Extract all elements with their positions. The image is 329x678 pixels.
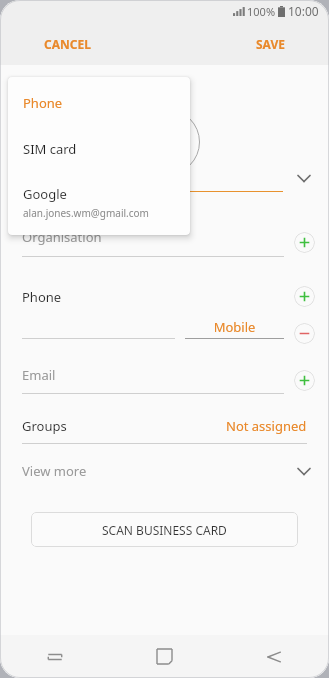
button[interactable]: Google (8, 172, 190, 235)
button[interactable]: SAVE (250, 30, 291, 58)
button[interactable]: Phone (0, 286, 329, 307)
button[interactable]: CANCEL (38, 30, 97, 58)
button[interactable]: Email (0, 366, 329, 394)
button[interactable]: Recents (0, 635, 109, 678)
button[interactable]: Expand name (293, 167, 315, 189)
staticText: Groups (22, 417, 226, 435)
button[interactable]: Name (0, 164, 329, 192)
staticText: SIM card (23, 140, 77, 158)
button[interactable]: Add phone number (294, 286, 315, 307)
staticText: Phone (22, 288, 294, 306)
button[interactable]: Organisation (0, 228, 329, 257)
button[interactable]: Add email (294, 370, 315, 391)
staticText: SAVE (256, 36, 285, 52)
button[interactable]: Back (219, 635, 329, 678)
button[interactable]: Add organisation (294, 232, 315, 253)
staticText: CANCEL (44, 36, 91, 52)
staticText: SCAN BUSINESS CARD (102, 522, 227, 538)
staticText: Phone (23, 94, 63, 112)
staticText: Email (22, 366, 56, 384)
button[interactable]: Remove phone number (294, 323, 315, 344)
staticText: Not assigned (226, 417, 307, 435)
staticText: View more (22, 462, 293, 480)
staticText: Organisation (22, 228, 102, 246)
staticText: 100% (247, 4, 276, 19)
button[interactable]: Groups (0, 417, 329, 444)
staticText: 10:00 (288, 3, 319, 19)
button[interactable]: SIM card (8, 126, 190, 172)
staticText: Mobile (185, 318, 284, 336)
button[interactable]: View more (0, 456, 329, 486)
button[interactable]: Home (109, 635, 219, 678)
staticText: Google (23, 185, 67, 203)
button[interactable]: Mobile (0, 318, 329, 339)
button[interactable]: Phone (8, 77, 190, 126)
staticText: alan.jones.wm@gmail.com (23, 206, 149, 220)
button[interactable]: SCAN BUSINESS CARD (31, 512, 298, 547)
